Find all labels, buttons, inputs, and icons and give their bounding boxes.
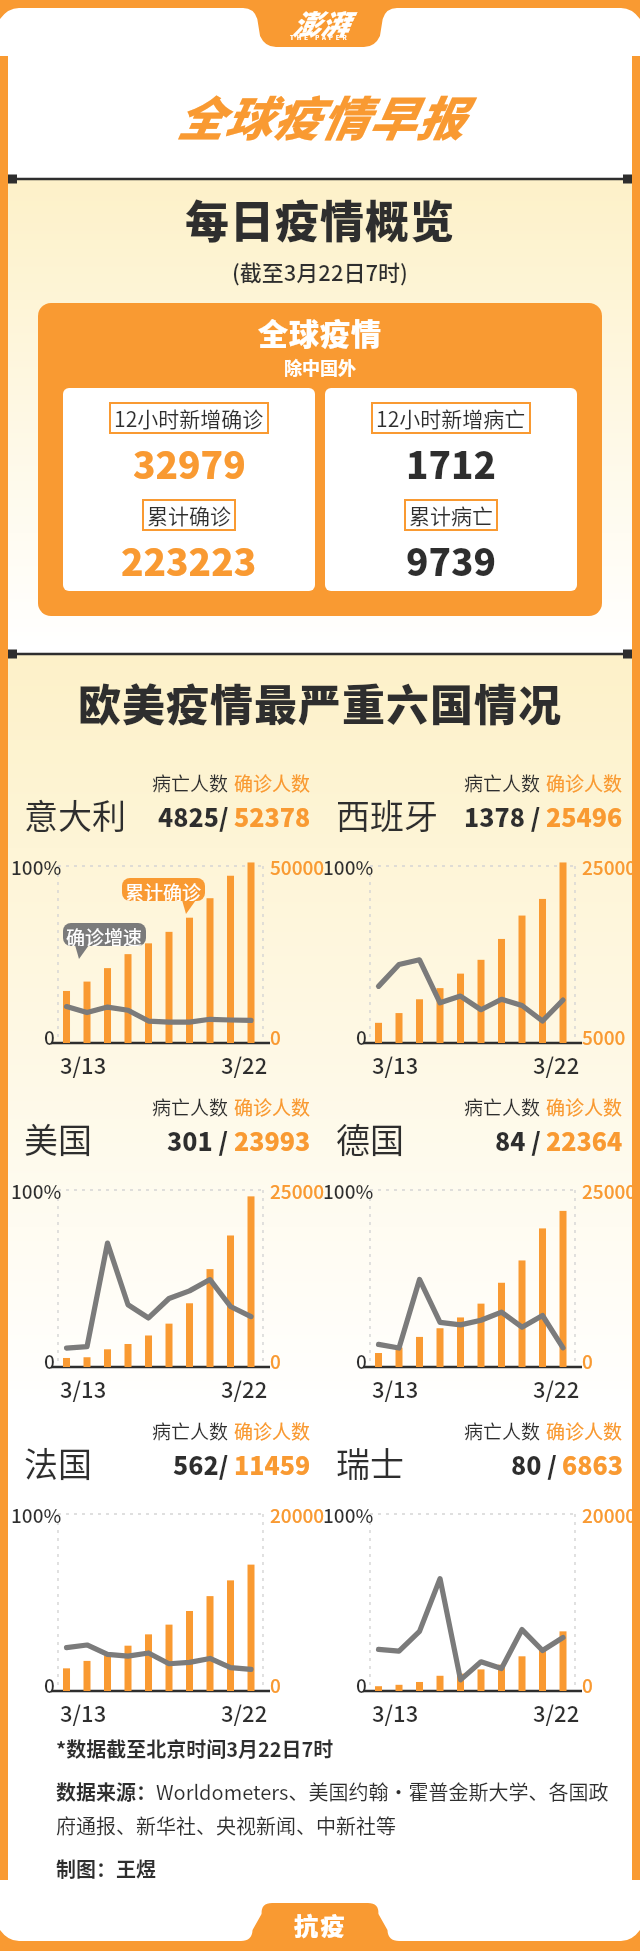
staticText: 府通报、新华社、央视新闻、中新社等 [56, 1811, 396, 1840]
staticText: 除中国外 [284, 354, 356, 380]
staticText: 制图：王煜 [56, 1854, 156, 1880]
button[interactable]: 抗疫 [0, 1880, 640, 1951]
staticText: 病亡人数 [464, 1417, 541, 1445]
staticText: *数据截至北京时间3月22日7时 [56, 1734, 334, 1763]
staticText: 美国 [24, 1114, 92, 1163]
staticText: 病亡人数 [464, 769, 541, 797]
staticText: 0 [44, 1347, 55, 1375]
staticText: 病亡人数 [152, 769, 229, 797]
staticText: 100% [323, 1177, 374, 1205]
staticText: THE PAPER [290, 33, 350, 42]
staticText: 1378 / [464, 798, 541, 834]
staticText: 84 / [495, 1122, 541, 1158]
staticText: 6863 [562, 1446, 623, 1482]
staticText: 3/22 [221, 1372, 268, 1404]
staticText: Worldometers、美国约翰·霍普金斯大学、各国政 [156, 1777, 609, 1806]
staticText: 301 / [167, 1122, 229, 1158]
button[interactable]: 12小时新增病亡 [325, 388, 577, 591]
staticText: 11459 [234, 1446, 311, 1482]
staticText: 确诊增速 [66, 923, 143, 946]
staticText: 223223 [121, 533, 257, 587]
staticText: 0 [582, 1347, 593, 1375]
staticText: 12小时新增病亡 [376, 403, 526, 433]
staticText: 50000 [270, 853, 325, 881]
staticText: 100% [323, 1501, 374, 1529]
staticText: 法国 [24, 1438, 92, 1487]
staticText: 3/22 [221, 1696, 268, 1728]
staticText: 0 [270, 1347, 281, 1375]
staticText: 0 [356, 1671, 367, 1699]
staticText: 12小时新增确诊 [114, 403, 264, 433]
staticText: 0 [356, 1023, 367, 1051]
staticText: 52378 [234, 798, 311, 834]
staticText: 3/22 [533, 1372, 580, 1404]
staticText: 确诊人数 [546, 769, 623, 797]
button[interactable]: 12小时新增确诊 [63, 388, 315, 591]
staticText: 3/13 [372, 1696, 419, 1728]
staticText: 澎湃 [292, 3, 349, 44]
staticText: 瑞士 [336, 1438, 404, 1487]
staticText: 32979 [133, 436, 246, 490]
staticText: (截至3月22日7时) [232, 255, 408, 287]
staticText: 22364 [546, 1122, 623, 1158]
staticText: 25000 [582, 853, 637, 881]
staticText: 1712 [406, 436, 497, 490]
staticText: 累计确诊 [125, 878, 202, 901]
staticText: 100% [11, 1177, 62, 1205]
staticText: 3/22 [533, 1048, 580, 1080]
staticText: 100% [11, 853, 62, 881]
staticText: 数据来源： [56, 1777, 156, 1806]
staticText: 病亡人数 [464, 1093, 541, 1121]
staticText: 确诊人数 [234, 769, 311, 797]
staticText: 562/ [173, 1446, 229, 1482]
staticText: 3/22 [221, 1048, 268, 1080]
staticText: 20000 [270, 1501, 325, 1529]
staticText: 0 [356, 1347, 367, 1375]
staticText: 0 [44, 1023, 55, 1051]
staticText: 0 [270, 1671, 281, 1699]
staticText: 20000 [582, 1501, 637, 1529]
staticText: 23993 [234, 1122, 311, 1158]
staticText: 25000 [582, 1177, 637, 1205]
staticText: 全球疫情 [258, 310, 382, 353]
staticText: 德国 [336, 1114, 404, 1163]
button[interactable]: The Paper logo [0, 0, 640, 56]
staticText: 西班牙 [336, 790, 438, 839]
staticText: 25000 [270, 1177, 325, 1205]
staticText: 确诊人数 [546, 1093, 623, 1121]
staticText: 3/13 [60, 1372, 107, 1404]
staticText: 3/22 [533, 1696, 580, 1728]
staticText: 确诊人数 [234, 1093, 311, 1121]
staticText: 0 [270, 1023, 281, 1051]
staticText: 欧美疫情最严重六国情况 [78, 671, 562, 733]
staticText: 3/13 [372, 1372, 419, 1404]
staticText: 累计确诊 [147, 500, 231, 530]
staticText: 25496 [546, 798, 623, 834]
staticText: 3/13 [60, 1696, 107, 1728]
staticText: 4825/ [158, 798, 229, 834]
staticText: 病亡人数 [152, 1417, 229, 1445]
staticText: 病亡人数 [152, 1093, 229, 1121]
staticText: 0 [44, 1671, 55, 1699]
staticText: 全球疫情早报 [176, 81, 464, 149]
staticText: 100% [11, 1501, 62, 1529]
staticText: 每日疫情概览 [185, 187, 455, 251]
staticText: 80 / [511, 1446, 557, 1482]
staticText: 确诊人数 [546, 1417, 623, 1445]
staticText: 确诊人数 [234, 1417, 311, 1445]
staticText: 0 [582, 1671, 593, 1699]
staticText: 抗疫 [294, 1907, 347, 1942]
staticText: 意大利 [24, 790, 126, 839]
staticText: 3/13 [60, 1048, 107, 1080]
staticText: 3/13 [372, 1048, 419, 1080]
staticText: 100% [323, 853, 374, 881]
staticText: 5000 [582, 1023, 626, 1051]
staticText: 累计病亡 [409, 500, 493, 530]
staticText: 9739 [406, 533, 497, 587]
